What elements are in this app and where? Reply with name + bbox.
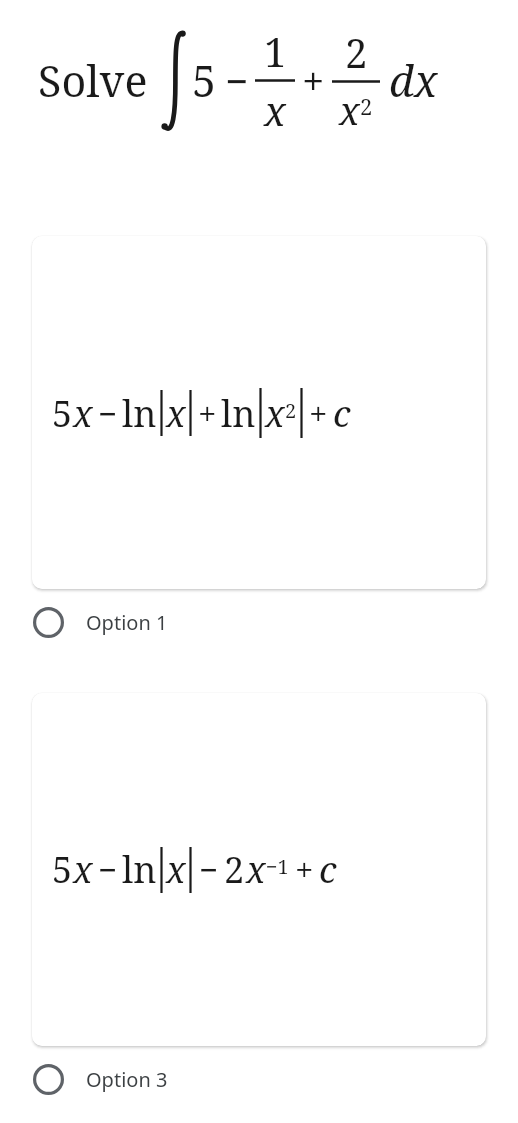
staticText: 2 [345, 25, 368, 79]
staticText: 5 [52, 389, 73, 438]
button[interactable]: Option 1 [0, 593, 518, 651]
staticText: 5 [52, 845, 73, 894]
staticText: + [302, 53, 325, 107]
staticText: 2 [285, 397, 297, 424]
staticText: −1 [266, 853, 289, 880]
button[interactable]: 5 [32, 693, 486, 1046]
staticText: x [166, 389, 186, 438]
staticText: + [198, 391, 217, 436]
staticText: − [225, 53, 249, 107]
staticText: x [265, 389, 285, 438]
staticText: x [73, 845, 93, 894]
staticText: ln [122, 845, 157, 894]
staticText: 2 [224, 845, 245, 894]
button[interactable]: Option 3 [0, 1050, 518, 1108]
staticText: 2 [360, 91, 373, 121]
staticText: − [98, 847, 118, 892]
staticText: Option 3 [86, 1066, 168, 1093]
staticText: 5 [192, 51, 217, 110]
staticText: x [73, 389, 93, 438]
staticText: x [246, 845, 266, 894]
staticText: x [166, 845, 186, 894]
staticText: Solve [38, 51, 148, 110]
staticText: ln [122, 389, 157, 438]
staticText: dx [389, 51, 438, 110]
staticText: x [339, 84, 360, 136]
staticText: Option 1 [86, 609, 168, 636]
staticText: + [295, 847, 314, 892]
staticText: c [333, 389, 351, 438]
staticText: − [199, 847, 219, 892]
staticText: 1 [264, 24, 287, 78]
button[interactable]: 5 [32, 236, 486, 589]
staticText: ln [221, 389, 256, 438]
staticText: + [309, 391, 328, 436]
staticText: − [98, 391, 118, 436]
staticText: c [319, 845, 337, 894]
staticText: x [264, 83, 286, 137]
